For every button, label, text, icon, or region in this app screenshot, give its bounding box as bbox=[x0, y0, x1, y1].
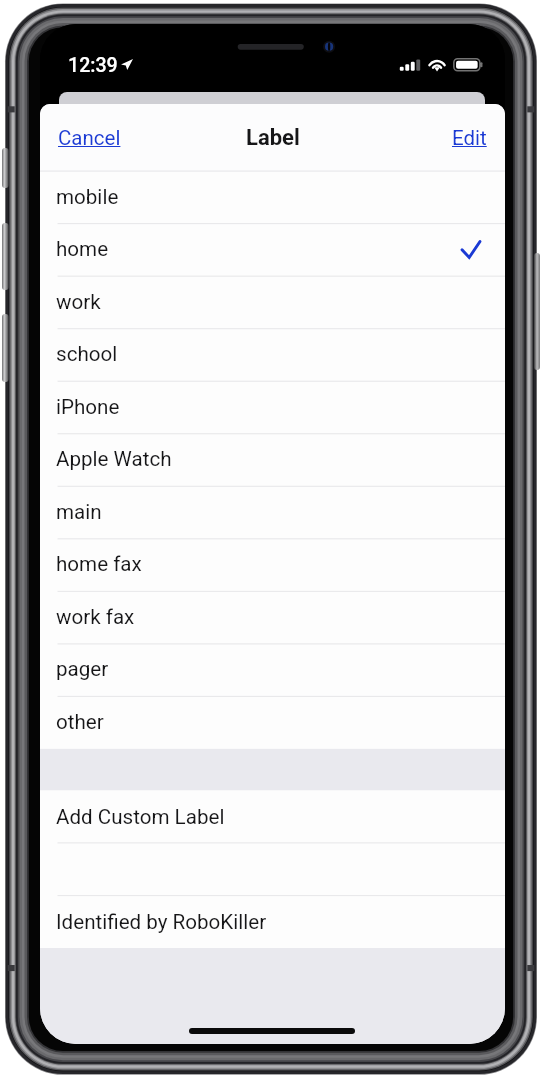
staticText: 12:39 bbox=[68, 54, 118, 77]
staticText: main bbox=[56, 500, 102, 524]
button[interactable]: Apple Watch bbox=[40, 433, 505, 485]
staticText: home bbox=[56, 237, 109, 261]
staticText: other bbox=[56, 710, 104, 734]
staticText: Label bbox=[246, 125, 300, 151]
button[interactable]: other bbox=[40, 696, 505, 748]
staticText: Edit bbox=[452, 126, 487, 150]
staticText: Cancel bbox=[58, 126, 121, 150]
button[interactable]: mobile bbox=[40, 171, 505, 223]
staticText: work bbox=[56, 290, 101, 314]
button[interactable]: iPhone bbox=[40, 381, 505, 433]
button[interactable]: Edit bbox=[438, 116, 505, 160]
button[interactable]: work fax bbox=[40, 591, 505, 643]
staticText: pager bbox=[56, 657, 109, 681]
button[interactable]: Add Custom Label bbox=[40, 790, 505, 843]
button[interactable]: main bbox=[40, 486, 505, 538]
button[interactable]: pager bbox=[40, 643, 505, 695]
button[interactable]: work bbox=[40, 276, 505, 328]
button[interactable]: school bbox=[40, 328, 505, 380]
button[interactable]: Identified by RoboKiller bbox=[40, 895, 505, 948]
staticText: iPhone bbox=[56, 395, 120, 419]
staticText: school bbox=[56, 342, 118, 366]
button[interactable]: home bbox=[40, 223, 505, 275]
button[interactable]: Cancel bbox=[40, 116, 135, 160]
staticText: mobile bbox=[56, 185, 119, 209]
staticText: Add Custom Label bbox=[56, 805, 225, 829]
staticText: Apple Watch bbox=[56, 447, 172, 471]
staticText: home fax bbox=[56, 552, 142, 576]
button[interactable]: home fax bbox=[40, 538, 505, 590]
staticText: Identified by RoboKiller bbox=[56, 910, 267, 934]
staticText: work fax bbox=[56, 605, 135, 629]
